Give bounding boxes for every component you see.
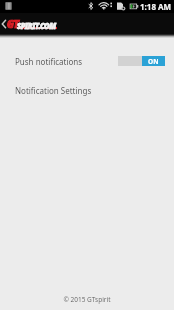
button[interactable]: ON <box>118 56 165 66</box>
staticText: 1:18 AM <box>140 1 172 12</box>
button[interactable]: Notification Settings <box>0 83 174 97</box>
button[interactable]: Back <box>0 13 8 34</box>
staticText: GT <box>7 17 19 31</box>
staticText: GT <box>7 17 19 31</box>
staticText: Notification Settings <box>15 85 92 96</box>
staticText: © 2015 GTspirit <box>0 295 174 304</box>
staticText: SPIRIT.COM <box>17 20 56 31</box>
staticText: SPIRIT.COM <box>17 20 56 31</box>
staticText: Push notifications <box>15 56 83 67</box>
staticText: ON <box>148 57 159 66</box>
button[interactable]: Push notifications <box>0 52 174 70</box>
